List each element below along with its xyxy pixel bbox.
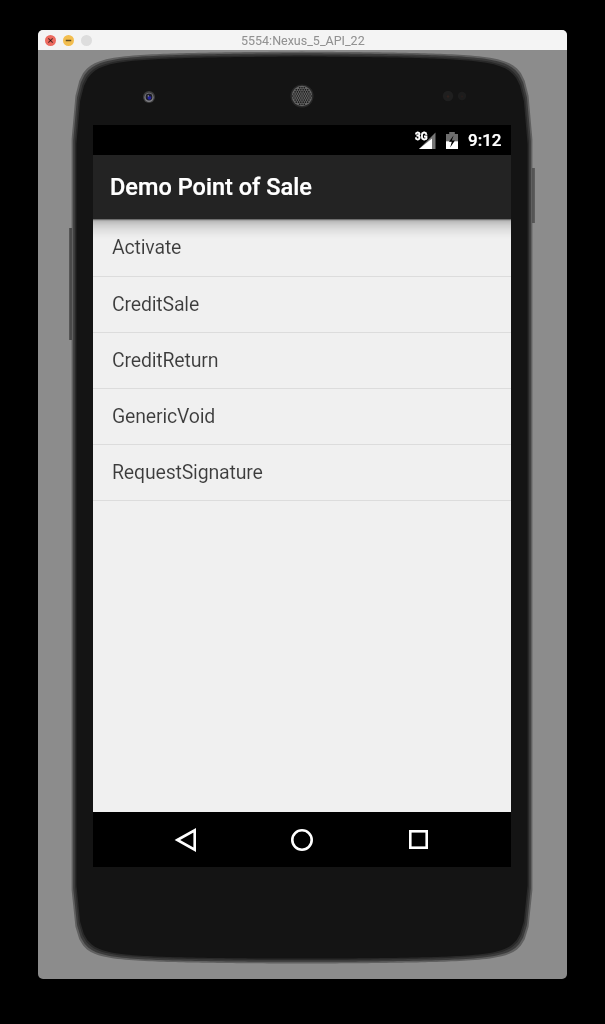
staticText: Demo Point of Sale xyxy=(110,173,312,201)
button[interactable]: RequestSignature xyxy=(93,445,511,501)
staticText: Activate xyxy=(112,236,182,259)
button[interactable]: Recents xyxy=(390,812,447,867)
button[interactable]: CreditSale xyxy=(93,277,511,333)
button[interactable]: Back xyxy=(157,812,214,867)
staticText: CreditReturn xyxy=(112,349,219,372)
staticText: CreditSale xyxy=(112,293,200,316)
button[interactable]: CreditReturn xyxy=(93,333,511,389)
staticText: GenericVoid xyxy=(112,405,216,428)
staticText: 9:12 xyxy=(468,130,502,150)
button[interactable]: Home xyxy=(273,812,330,867)
staticText: 5554:Nexus_5_API_22 xyxy=(241,33,365,48)
staticText: RequestSignature xyxy=(112,461,263,484)
staticText: 3G xyxy=(415,131,428,143)
button[interactable]: Activate xyxy=(93,219,511,277)
button[interactable]: GenericVoid xyxy=(93,389,511,445)
